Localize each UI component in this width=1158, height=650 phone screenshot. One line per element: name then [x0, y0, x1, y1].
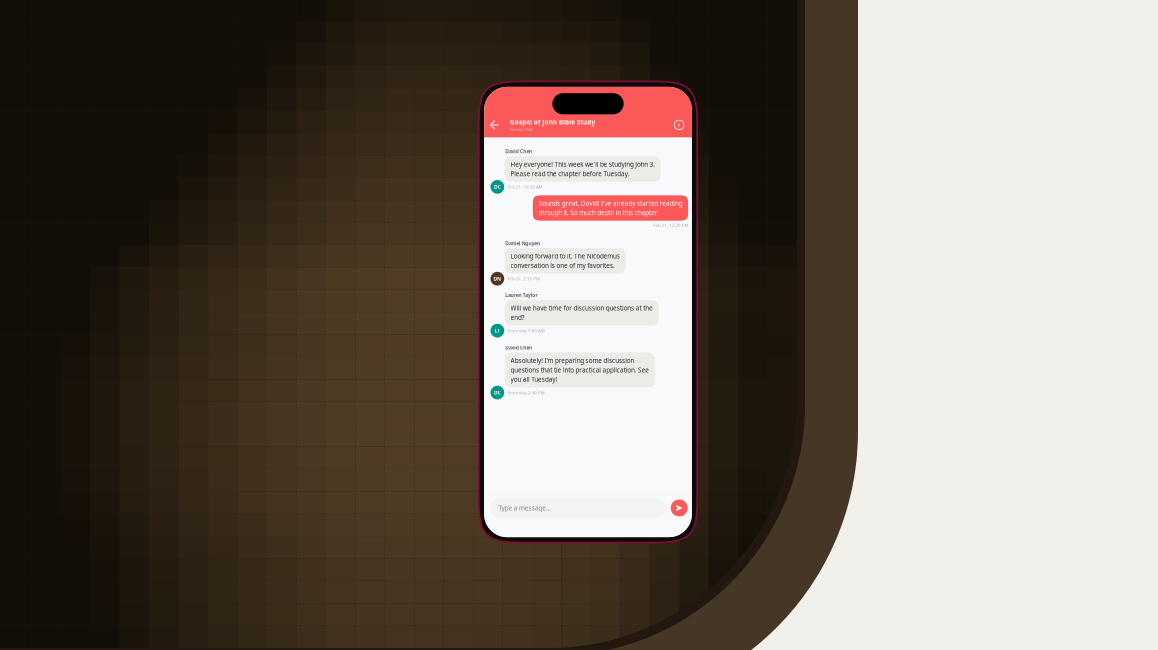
staticText: conversation is one of my favorites.	[441, 216, 638, 232]
staticText: Absolutely! I'm preparing some discussio…	[441, 396, 675, 412]
staticText: Yesterday 2:30 PM	[435, 459, 505, 470]
staticText: Please read the chapter before Tuesday.	[441, 42, 666, 58]
staticText: Hey everyone! This week we'll be studyin…	[441, 24, 714, 40]
staticText: through it. So much depth in this chapte…	[494, 116, 720, 132]
staticText: Yesterday 9:00 AM	[435, 342, 505, 353]
staticText: questions that tie into practical applic…	[441, 414, 703, 429]
staticText: David Chen	[431, 373, 482, 386]
staticText: Daniel Nguyen	[431, 176, 497, 188]
staticText: Looking forward to it. The Nicodemus	[441, 198, 648, 214]
staticText: Lauren Taylor	[431, 274, 492, 286]
staticText: Feb 21, 2:15 PM	[435, 244, 496, 254]
staticText: Sounds great, David! I've already starte…	[494, 98, 766, 114]
staticText: Will we have time for discussion questio…	[441, 296, 710, 312]
staticText: you all Tuesday!	[441, 432, 529, 447]
